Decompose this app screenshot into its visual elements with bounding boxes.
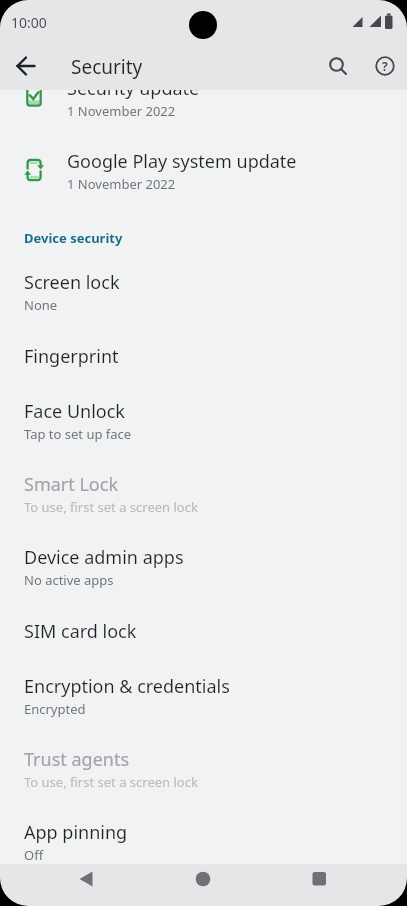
button[interactable]: Smart Lock (0, 454, 407, 527)
staticText: Google Play system update (67, 149, 297, 174)
button[interactable] (63, 864, 111, 906)
button[interactable]: SIM card lock (0, 600, 407, 656)
staticText: ? (382, 58, 388, 74)
staticText: Tap to set up face (24, 425, 132, 443)
staticText: Encryption & credentials (24, 674, 230, 699)
button[interactable]: ? (365, 46, 405, 86)
staticText: App pinning (24, 820, 128, 845)
staticText: 1 November 2022 (67, 175, 176, 193)
button[interactable] (8, 47, 46, 85)
staticText: Security (71, 54, 143, 80)
staticText: To use, first set a screen lock (24, 773, 198, 791)
button[interactable]: Face Unlock (0, 381, 407, 454)
staticText: Off (24, 846, 44, 864)
staticText: 1 November 2022 (67, 102, 176, 120)
staticText: Trust agents (24, 747, 130, 772)
button[interactable] (295, 864, 343, 906)
staticText: To use, first set a screen lock (24, 498, 198, 516)
staticText: 10:00 (11, 13, 47, 32)
staticText: Fingerprint (24, 344, 119, 369)
button[interactable] (179, 864, 227, 906)
staticText: SIM card lock (24, 619, 137, 644)
staticText: None (24, 296, 58, 314)
button[interactable] (318, 46, 358, 86)
button[interactable]: Google Play system update (0, 131, 407, 204)
staticText: Device admin apps (24, 545, 184, 570)
button[interactable]: Encryption & credentials (0, 656, 407, 729)
button[interactable]: Device admin apps (0, 527, 407, 600)
button[interactable]: Trust agents (0, 729, 407, 802)
staticText: Device security (24, 229, 123, 247)
staticText: Security update (67, 76, 200, 101)
staticText: Smart Lock (24, 472, 118, 497)
staticText: Face Unlock (24, 399, 125, 424)
staticText: Screen lock (24, 270, 120, 295)
button[interactable]: App pinning (0, 802, 407, 875)
staticText: No active apps (24, 571, 114, 589)
button[interactable]: Screen lock (0, 252, 407, 325)
button[interactable]: Security update (0, 58, 407, 131)
button[interactable]: Fingerprint (0, 325, 407, 381)
staticText: Encrypted (24, 700, 86, 718)
